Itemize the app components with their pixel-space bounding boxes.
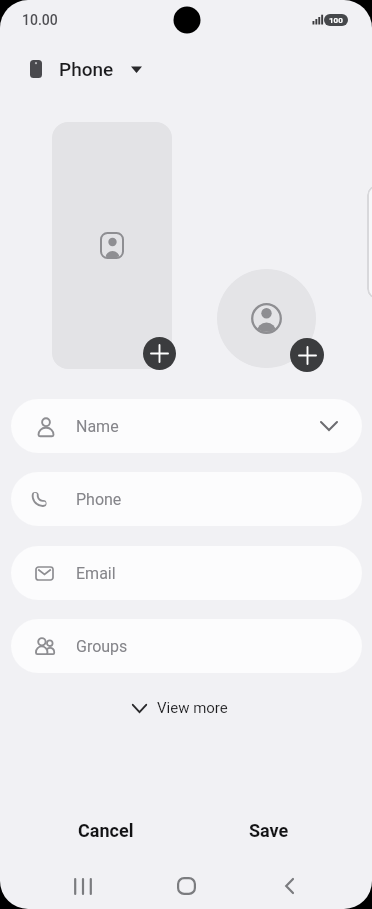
staticText: Save xyxy=(249,820,289,841)
button[interactable]: Save xyxy=(209,808,329,852)
staticText: View more xyxy=(157,699,228,717)
button[interactable] xyxy=(63,866,103,906)
button[interactable]: View more xyxy=(132,697,228,719)
button[interactable]: Name xyxy=(11,399,362,453)
button[interactable] xyxy=(269,866,309,906)
staticText: Groups xyxy=(76,637,128,656)
button[interactable] xyxy=(166,866,206,906)
staticText: 10.00 xyxy=(22,12,58,28)
staticText: Phone xyxy=(76,490,122,509)
staticText: Phone xyxy=(59,58,114,80)
button[interactable]: Phone xyxy=(11,472,362,526)
staticText: Cancel xyxy=(78,820,134,841)
button[interactable] xyxy=(52,122,172,369)
staticText: Email xyxy=(76,564,116,583)
button[interactable]: Phone xyxy=(30,56,142,82)
button[interactable] xyxy=(143,337,176,370)
button[interactable]: Email xyxy=(11,546,362,600)
button[interactable] xyxy=(217,269,316,368)
staticText: 100 xyxy=(329,16,343,25)
button[interactable]: Groups xyxy=(11,619,362,673)
button[interactable]: Cancel xyxy=(46,808,166,852)
button[interactable] xyxy=(290,338,324,372)
staticText: Name xyxy=(76,417,119,436)
